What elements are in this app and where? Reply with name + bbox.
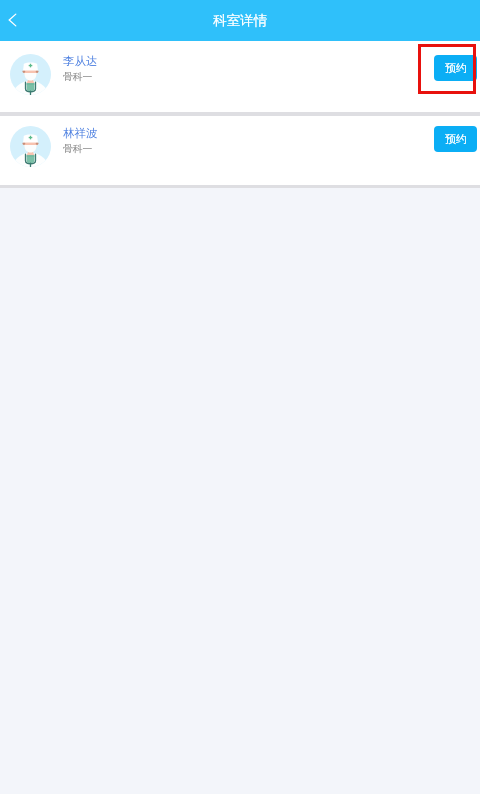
staticText: 科室详情 [213, 12, 267, 29]
button[interactable]: 预约 [434, 126, 477, 152]
button[interactable]: 李从达 [0, 41, 480, 112]
button[interactable]: Back [0, 0, 32, 41]
staticText: 骨科一 [63, 71, 93, 83]
staticText: 预约 [445, 61, 467, 75]
staticText: 李从达 [63, 54, 98, 68]
staticText: 骨科一 [63, 143, 93, 155]
staticText: 预约 [445, 132, 467, 146]
button[interactable]: 林祥波 [0, 116, 480, 185]
staticText: 林祥波 [63, 126, 98, 140]
button[interactable]: 预约 [434, 55, 477, 81]
